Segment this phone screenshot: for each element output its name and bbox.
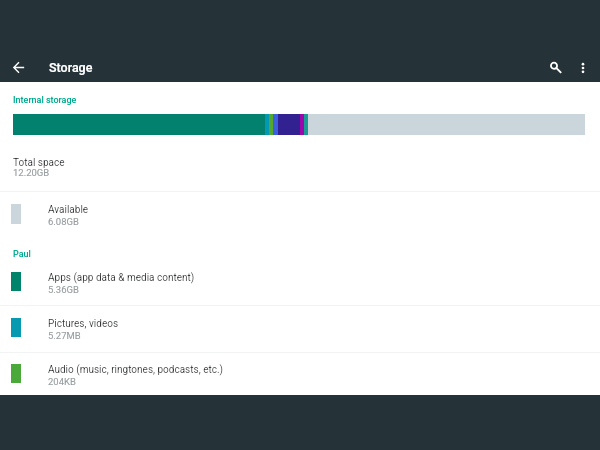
button[interactable]: Search [539, 50, 573, 84]
staticText: Pictures, videos [48, 318, 119, 330]
staticText: 12.20GB [13, 167, 50, 178]
staticText: Internal storage [13, 95, 77, 106]
button[interactable] [0, 148, 600, 191]
staticText: 5.36GB [48, 284, 79, 295]
button[interactable] [0, 353, 600, 395]
button[interactable] [0, 264, 600, 305]
button[interactable]: Back [1, 50, 36, 85]
button[interactable] [0, 306, 600, 351]
staticText: 204KB [48, 376, 76, 387]
staticText: Storage [49, 60, 93, 75]
button[interactable]: More options [566, 51, 600, 85]
staticText: Available [48, 204, 89, 216]
staticText: 6.08GB [48, 216, 79, 227]
button[interactable] [0, 192, 600, 238]
staticText: Audio (music, ringtones, podcasts, etc.) [48, 364, 224, 376]
staticText: Total space [13, 157, 65, 169]
staticText: Paul [13, 249, 31, 260]
staticText: Apps (app data & media content) [48, 272, 195, 284]
staticText: 5.27MB [48, 330, 81, 341]
